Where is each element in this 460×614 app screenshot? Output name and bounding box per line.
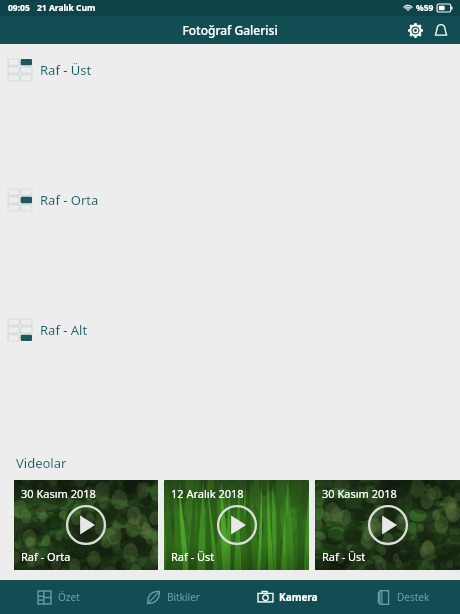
staticText: 12 Aralık 2018 xyxy=(171,486,244,501)
staticText: Raf - Üst xyxy=(322,549,366,564)
staticText: Bitkiler xyxy=(167,590,200,604)
staticText: Raf - Orta xyxy=(21,549,71,564)
staticText: 30 Kasım 2018 xyxy=(21,486,96,501)
button[interactable]: 30 Kasım 2018 xyxy=(315,480,460,570)
button[interactable]: 12 Aralık 2018 xyxy=(164,480,309,570)
button[interactable]: Bitkiler xyxy=(115,580,230,614)
staticText: 30 Kasım 2018 xyxy=(322,486,397,501)
button[interactable]: Settings xyxy=(402,17,428,43)
button[interactable]: Özet xyxy=(0,580,115,614)
staticText: Raf - Alt xyxy=(40,321,88,339)
other: Play xyxy=(216,504,258,546)
staticText: Fotoğraf Galerisi xyxy=(182,22,278,38)
button[interactable]: Notifications xyxy=(428,17,454,43)
staticText: %59 xyxy=(416,2,434,14)
button[interactable]: Raf - Alt xyxy=(0,304,460,356)
button[interactable]: Kamera xyxy=(230,580,345,614)
staticText: Özet xyxy=(58,590,80,604)
button[interactable]: 30 Kasım 2018 xyxy=(14,480,158,570)
staticText: Raf - Orta xyxy=(40,191,99,209)
staticText: Kamera xyxy=(279,590,318,604)
staticText: Videolar xyxy=(16,454,67,472)
staticText: Raf - Üst xyxy=(171,549,215,564)
other: Play xyxy=(367,504,409,546)
staticText: Destek xyxy=(397,590,430,604)
staticText: 21 Aralık Cum xyxy=(37,2,96,14)
other: Play xyxy=(65,504,107,546)
button[interactable]: Raf - Üst xyxy=(0,44,460,96)
button[interactable]: Destek xyxy=(345,580,460,614)
button[interactable]: Raf - Orta xyxy=(0,174,460,226)
staticText: Raf - Üst xyxy=(40,61,92,79)
staticText: 09:05 xyxy=(8,2,30,14)
